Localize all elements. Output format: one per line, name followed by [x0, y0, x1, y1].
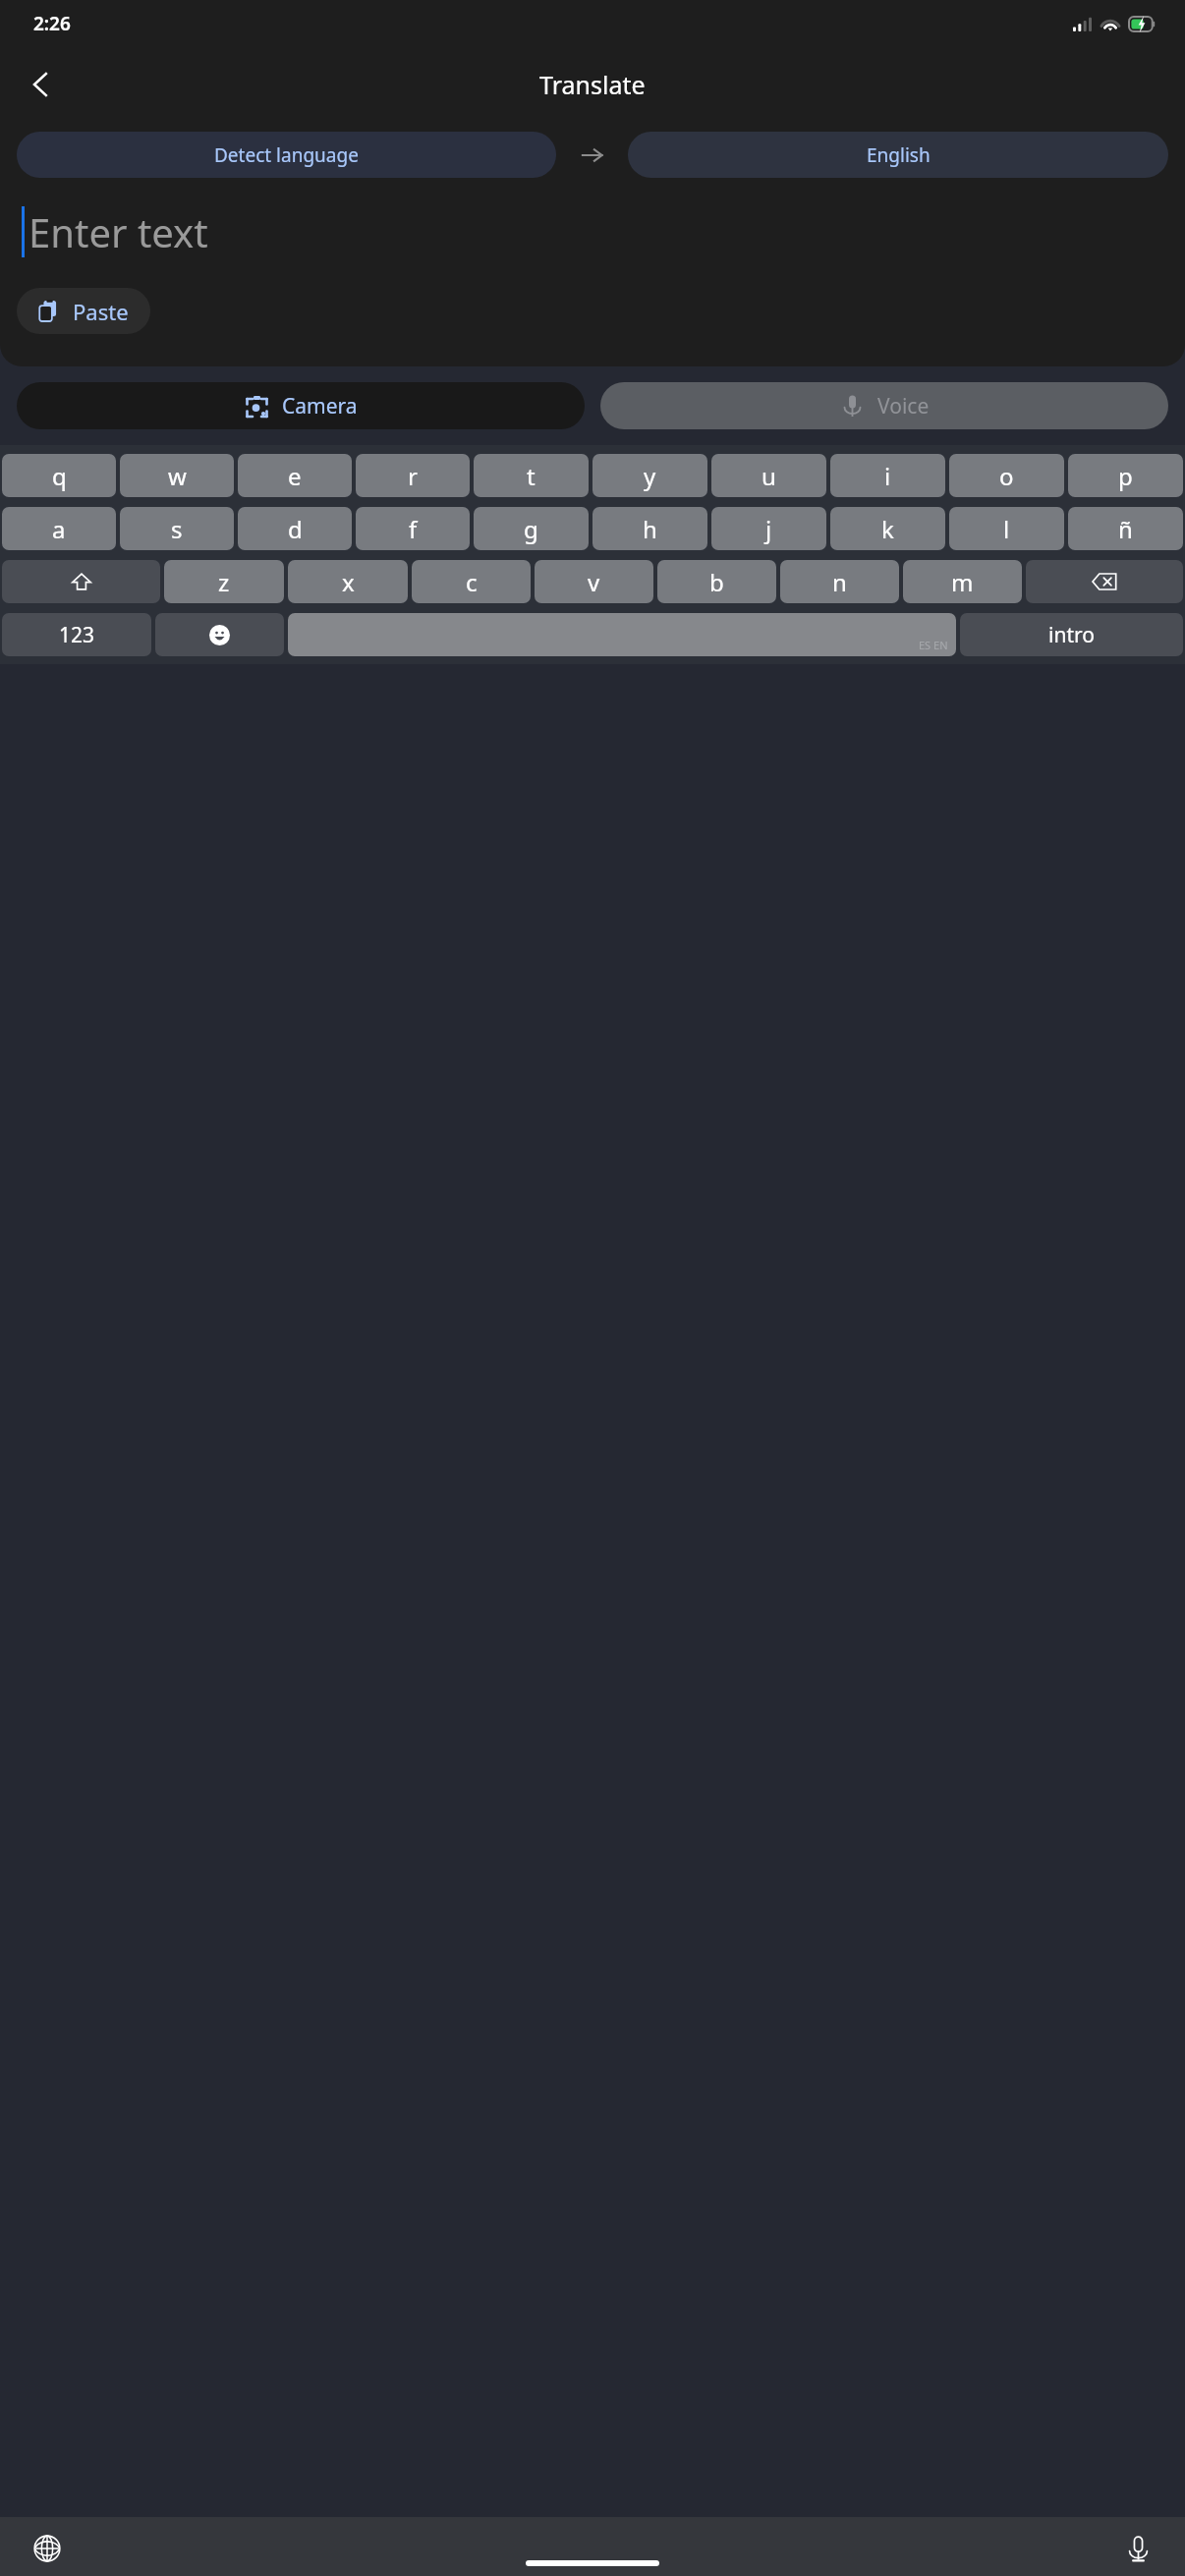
button[interactable]: n [780, 560, 899, 603]
staticText: h [643, 513, 657, 545]
staticText: e [288, 460, 302, 492]
staticText: j [765, 513, 772, 545]
staticText: d [288, 513, 303, 545]
button[interactable]: Voice [600, 382, 1168, 429]
button[interactable]: k [830, 507, 945, 550]
button[interactable]: y [592, 454, 707, 497]
button[interactable]: 123 [2, 613, 151, 656]
button[interactable]: s [120, 507, 234, 550]
button[interactable]: h [592, 507, 707, 550]
staticText: w [168, 460, 187, 492]
button[interactable]: o [949, 454, 1064, 497]
staticText: Enter text [28, 205, 208, 258]
button[interactable]: Voice input [1112, 2523, 1163, 2574]
button[interactable]: t [474, 454, 589, 497]
button[interactable]: English [628, 132, 1168, 178]
staticText: b [709, 566, 724, 598]
button[interactable]: Camera [17, 382, 585, 429]
staticText: ñ [1118, 513, 1133, 545]
button[interactable]: v [535, 560, 653, 603]
staticText: g [524, 513, 538, 545]
staticText: s [171, 513, 183, 545]
button[interactable]: j [711, 507, 826, 550]
button[interactable]: Backspace [1026, 560, 1183, 603]
staticText: Camera [282, 392, 358, 420]
staticText: o [999, 460, 1014, 492]
staticText: c [466, 566, 478, 598]
staticText: z [218, 566, 230, 598]
staticText: Detect language [214, 142, 359, 168]
button[interactable]: g [474, 507, 589, 550]
button[interactable]: intro [960, 613, 1183, 656]
button[interactable]: d [238, 507, 352, 550]
staticText: k [881, 513, 894, 545]
button[interactable]: c [412, 560, 531, 603]
button[interactable]: i [830, 454, 945, 497]
staticText: Voice [877, 392, 930, 420]
button[interactable]: f [356, 507, 470, 550]
staticText: intro [1048, 621, 1095, 649]
staticText: q [52, 460, 67, 492]
button[interactable]: e [238, 454, 352, 497]
button[interactable]: Emoji [155, 613, 284, 656]
button[interactable]: Space [288, 613, 956, 656]
button[interactable]: a [2, 507, 116, 550]
staticText: 123 [59, 621, 95, 649]
button[interactable]: m [903, 560, 1022, 603]
staticText: l [1003, 513, 1010, 545]
button[interactable]: p [1068, 454, 1183, 497]
button[interactable]: r [356, 454, 470, 497]
button[interactable]: Paste [17, 288, 150, 334]
staticText: v [588, 566, 600, 598]
staticText: u [762, 460, 776, 492]
staticText: m [951, 566, 974, 598]
staticText: n [832, 566, 847, 598]
staticText: y [644, 460, 656, 492]
staticText: a [52, 513, 66, 545]
button[interactable]: Shift [2, 560, 160, 603]
staticText: f [409, 513, 418, 545]
button[interactable]: l [949, 507, 1064, 550]
button[interactable]: Detect language [17, 132, 556, 178]
button[interactable]: q [2, 454, 116, 497]
button[interactable]: w [120, 454, 234, 497]
staticText: English [867, 142, 931, 168]
staticText: t [527, 460, 536, 492]
staticText: Paste [73, 297, 129, 326]
button[interactable]: Back [14, 57, 69, 112]
staticText: Translate [539, 68, 646, 101]
button[interactable]: ñ [1068, 507, 1183, 550]
staticText: p [1118, 460, 1133, 492]
button[interactable]: b [657, 560, 776, 603]
staticText: i [884, 460, 891, 492]
button[interactable]: x [288, 560, 408, 603]
button[interactable]: u [711, 454, 826, 497]
staticText: x [342, 566, 355, 598]
staticText: ES EN [919, 638, 948, 652]
button[interactable]: Change language [22, 2523, 73, 2574]
staticText: 2:26 [33, 11, 71, 36]
staticText: r [408, 460, 418, 492]
button[interactable]: z [164, 560, 284, 603]
